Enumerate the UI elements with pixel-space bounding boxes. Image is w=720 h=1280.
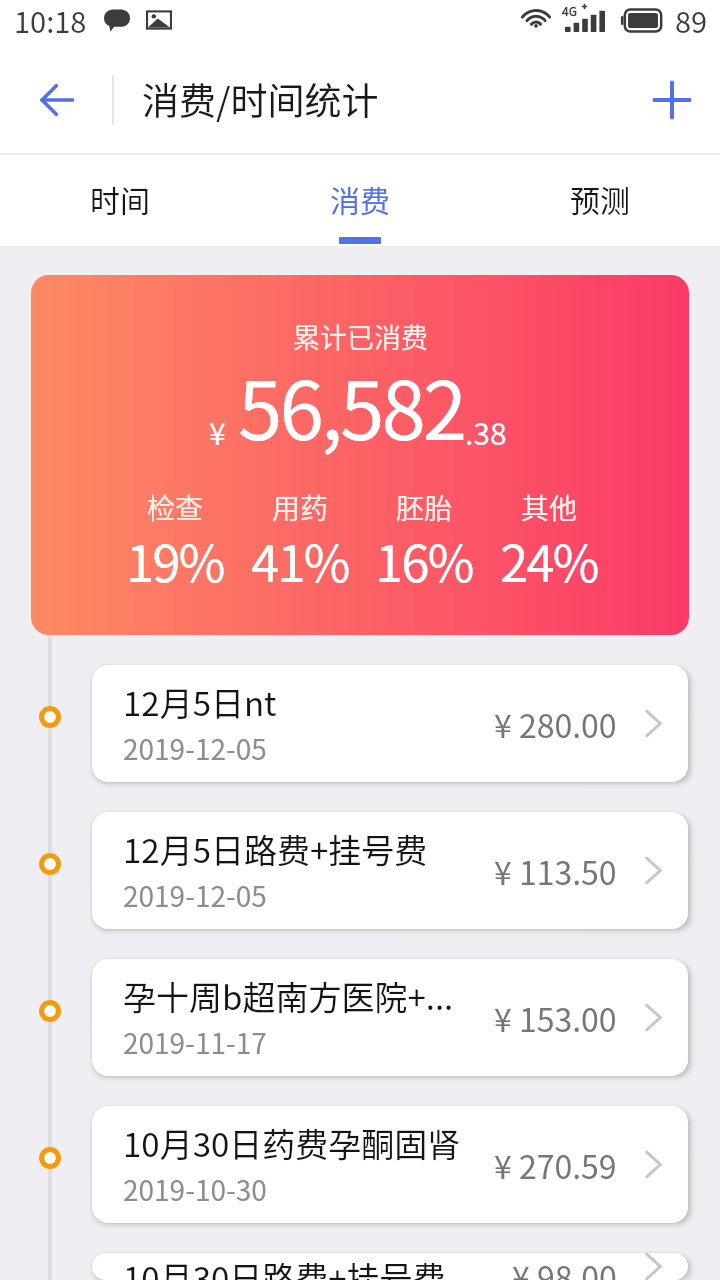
button[interactable]: Add xyxy=(624,51,720,148)
staticText: 消费/时间统计 xyxy=(142,72,379,126)
staticText: ¥ 113.50 xyxy=(494,848,617,894)
staticText: 89 xyxy=(675,0,708,41)
staticText: 2019-12-05 xyxy=(123,728,267,769)
staticText: 19% xyxy=(126,523,224,597)
staticText: 16% xyxy=(375,523,473,597)
staticText: 胚胎 xyxy=(396,487,453,528)
staticText: ¥ 98.00 xyxy=(512,1253,617,1280)
staticText: .38 xyxy=(465,410,507,453)
staticText: 12月5日nt xyxy=(123,678,277,726)
staticText: 10:18 xyxy=(14,0,87,41)
button[interactable]: Back xyxy=(0,51,112,148)
staticText: 41% xyxy=(251,523,349,597)
staticText: 检查 xyxy=(147,487,204,528)
staticText: 2019-10-30 xyxy=(123,1169,267,1210)
staticText: 24% xyxy=(500,523,598,597)
staticText: 孕十周b超南方医院+... xyxy=(123,972,454,1020)
button[interactable]: 消费 xyxy=(240,153,480,246)
staticText: ¥ 270.59 xyxy=(494,1142,617,1188)
button[interactable]: 时间 xyxy=(0,153,240,246)
staticText: 预测 xyxy=(570,177,630,220)
staticText: 4G xyxy=(562,2,577,19)
button[interactable]: 10月30日路费+挂号费 xyxy=(92,1253,688,1280)
staticText: ¥ xyxy=(209,410,226,453)
staticText: 12月5日路费+挂号费 xyxy=(123,825,428,873)
button[interactable]: 10月30日药费孕酮固肾 xyxy=(92,1106,688,1223)
staticText: 时间 xyxy=(90,177,150,220)
staticText: 用药 xyxy=(272,487,329,528)
button[interactable]: 孕十周b超南方医院+... xyxy=(92,959,688,1076)
staticText: 2019-11-17 xyxy=(123,1022,267,1063)
button[interactable]: 12月5日nt xyxy=(92,665,688,782)
staticText: 消费 xyxy=(330,177,390,220)
staticText: ¥ 280.00 xyxy=(494,701,617,747)
staticText: 其他 xyxy=(521,487,578,528)
staticText: 10月30日路费+挂号费 xyxy=(123,1253,446,1280)
staticText: ¥ 153.00 xyxy=(494,995,617,1041)
button[interactable]: 预测 xyxy=(480,153,720,246)
staticText: 10月30日药费孕酮固肾 xyxy=(123,1119,461,1167)
button[interactable]: 12月5日路费+挂号费 xyxy=(92,812,688,929)
staticText: 2019-12-05 xyxy=(123,875,267,916)
staticText: 累计已消费 xyxy=(293,317,428,356)
staticText: 56,582 xyxy=(238,347,465,463)
